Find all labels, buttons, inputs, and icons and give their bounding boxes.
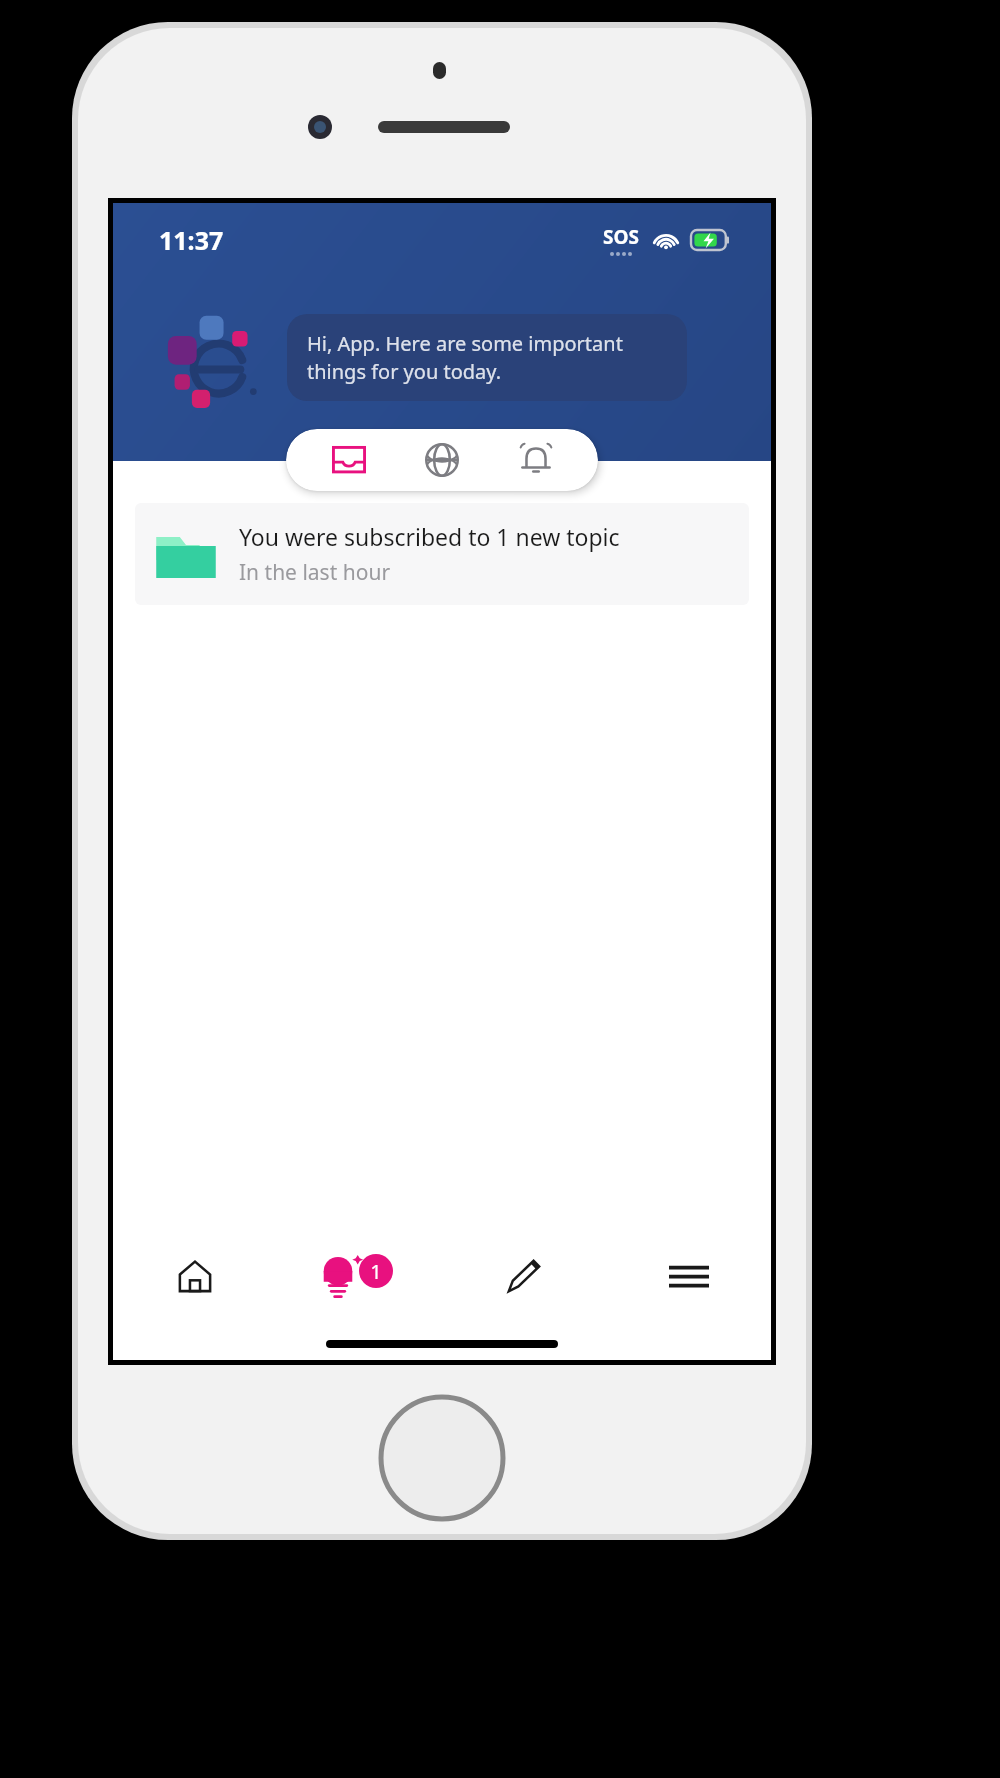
button[interactable]: Compose xyxy=(441,1228,606,1324)
staticText: SOS xyxy=(603,224,639,250)
staticText: You were subscribed to 1 new topic xyxy=(239,521,620,552)
staticText: 11:37 xyxy=(159,223,224,257)
staticText: Hi, App. Here are some important things … xyxy=(307,330,667,385)
staticText: In the last hour xyxy=(239,558,391,587)
staticText: 1 xyxy=(370,1258,382,1285)
button[interactable]: Home xyxy=(113,1228,277,1324)
button[interactable]: Ideas, 1 new xyxy=(277,1228,441,1324)
button[interactable]: Inbox xyxy=(318,429,380,491)
button[interactable]: Notifications xyxy=(505,429,567,491)
button[interactable]: You were subscribed to 1 new topic xyxy=(135,503,749,605)
button[interactable]: Menu xyxy=(606,1228,771,1324)
button[interactable]: Web xyxy=(411,429,473,491)
